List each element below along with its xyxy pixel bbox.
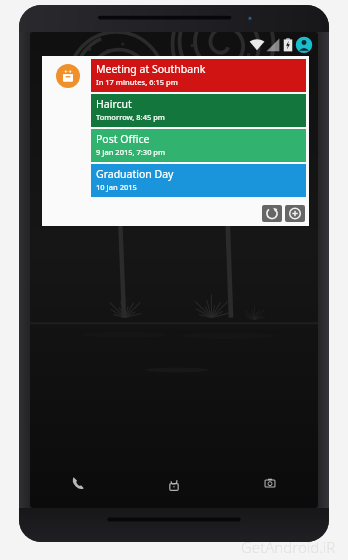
button[interactable]: Calendar app bbox=[56, 64, 80, 88]
button[interactable]: Meeting at Southbank bbox=[91, 59, 306, 92]
staticText: Post Office bbox=[96, 132, 150, 146]
staticText: 9 Jan 2015, 7:30 pm bbox=[96, 147, 166, 157]
staticText: 10 Jan 2015 bbox=[96, 182, 137, 192]
staticText: Tomorrow, 8:45 pm bbox=[96, 112, 165, 122]
button[interactable]: Unlock bbox=[126, 460, 222, 506]
staticText: GetAndroid.iR bbox=[241, 537, 336, 557]
staticText: In 17 minutes, 6:15 pm bbox=[96, 77, 178, 87]
staticText: Meeting at Southbank bbox=[96, 62, 206, 76]
staticText: Haircut bbox=[96, 97, 132, 111]
staticText: Graduation Day bbox=[96, 167, 174, 181]
button[interactable]: Camera bbox=[222, 460, 318, 506]
button[interactable]: Phone bbox=[30, 460, 126, 506]
button[interactable]: Post Office bbox=[91, 129, 306, 162]
button[interactable]: Haircut bbox=[91, 94, 306, 127]
button[interactable]: Graduation Day bbox=[91, 164, 306, 197]
button[interactable]: Add event bbox=[285, 205, 305, 222]
button[interactable]: Refresh bbox=[262, 205, 282, 222]
